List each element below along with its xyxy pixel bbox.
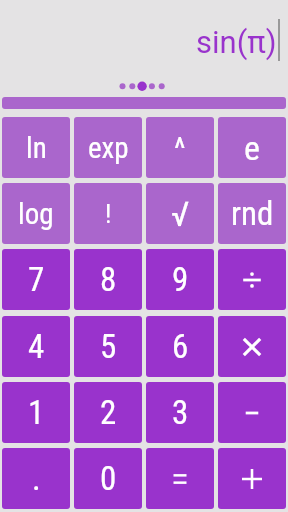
- button[interactable]: 5: [74, 316, 142, 377]
- button[interactable]: [218, 448, 286, 509]
- staticText: !: [105, 199, 112, 229]
- staticText: e: [244, 128, 260, 168]
- button[interactable]: √: [146, 183, 214, 244]
- staticText: 7: [28, 260, 45, 299]
- staticText: ^: [174, 130, 186, 166]
- staticText: 4: [28, 327, 45, 366]
- staticText: rnd: [231, 194, 274, 233]
- button[interactable]: 9: [146, 249, 214, 310]
- button[interactable]: exp: [74, 117, 142, 178]
- staticText: ln: [26, 131, 47, 165]
- button[interactable]: ln: [2, 117, 70, 178]
- staticText: 0: [100, 459, 117, 498]
- button[interactable]: 6: [146, 316, 214, 377]
- button[interactable]: 3: [146, 382, 214, 443]
- staticText: exp: [88, 131, 129, 165]
- staticText: √: [171, 194, 190, 234]
- staticText: log: [18, 197, 54, 231]
- staticText: 8: [100, 260, 117, 299]
- button[interactable]: 2: [74, 382, 142, 443]
- button[interactable]: [218, 382, 286, 443]
- staticText: 6: [172, 327, 189, 366]
- button[interactable]: 8: [74, 249, 142, 310]
- staticText: sin(π): [196, 24, 277, 60]
- staticText: 1: [28, 393, 45, 432]
- staticText: 5: [100, 327, 117, 366]
- button[interactable]: log: [2, 183, 70, 244]
- button[interactable]: e: [218, 117, 286, 178]
- staticText: 9: [172, 260, 189, 299]
- button[interactable]: [2, 97, 286, 109]
- staticText: 2: [100, 393, 117, 432]
- button[interactable]: .: [2, 448, 70, 509]
- button[interactable]: 1: [2, 382, 70, 443]
- staticText: 3: [172, 393, 189, 432]
- button[interactable]: rnd: [218, 183, 286, 244]
- button[interactable]: 7: [2, 249, 70, 310]
- button[interactable]: 4: [2, 316, 70, 377]
- button[interactable]: [146, 448, 214, 509]
- button[interactable]: !: [74, 183, 142, 244]
- staticText: .: [32, 459, 41, 498]
- button[interactable]: ^: [146, 117, 214, 178]
- button[interactable]: [218, 249, 286, 310]
- button[interactable]: 0: [74, 448, 142, 509]
- button[interactable]: [218, 316, 286, 377]
